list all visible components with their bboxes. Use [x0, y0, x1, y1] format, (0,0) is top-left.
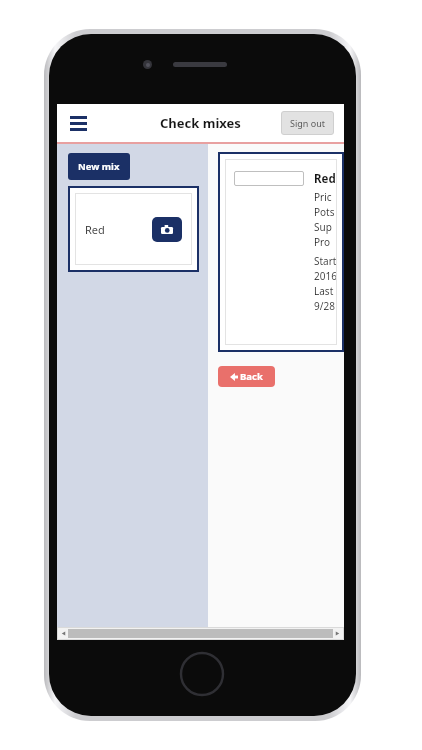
button[interactable]: Menu	[67, 113, 90, 134]
staticText: Prom	[314, 235, 337, 249]
button[interactable]: Red	[68, 186, 199, 272]
staticText: Last	[314, 284, 336, 298]
staticText: New mix	[78, 160, 120, 173]
staticText: Start	[314, 254, 337, 268]
staticText: 2016	[314, 269, 337, 283]
button[interactable]: New mix	[68, 153, 130, 180]
staticText: Supp	[314, 220, 337, 234]
staticText: Sign out	[290, 117, 325, 129]
button[interactable]: Sign out	[281, 111, 334, 135]
button[interactable]: Scroll right	[334, 630, 341, 637]
staticText: Potsi	[314, 205, 337, 219]
button[interactable]: Scroll left	[60, 630, 67, 637]
staticText: Price	[314, 190, 337, 204]
button[interactable]: Take photo	[152, 217, 182, 242]
staticText: Back	[240, 370, 263, 383]
button[interactable]: Back	[218, 366, 275, 387]
staticText: Check mixes	[160, 114, 241, 132]
staticText: Red	[314, 171, 336, 187]
staticText: Red	[85, 222, 105, 237]
staticText: 9/28/	[314, 299, 337, 313]
